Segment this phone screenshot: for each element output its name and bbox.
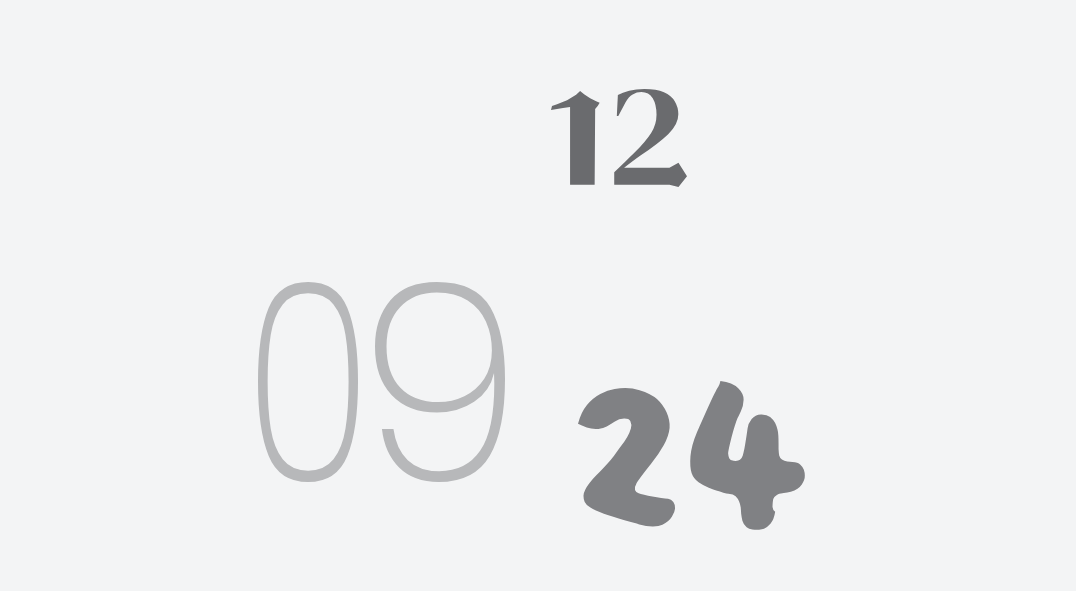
other: Numerals 12 09 24 type specimen xyxy=(0,0,1076,591)
button[interactable]: 24 xyxy=(578,381,805,530)
button[interactable]: 12 xyxy=(551,89,687,187)
button[interactable]: 09 xyxy=(258,282,505,482)
